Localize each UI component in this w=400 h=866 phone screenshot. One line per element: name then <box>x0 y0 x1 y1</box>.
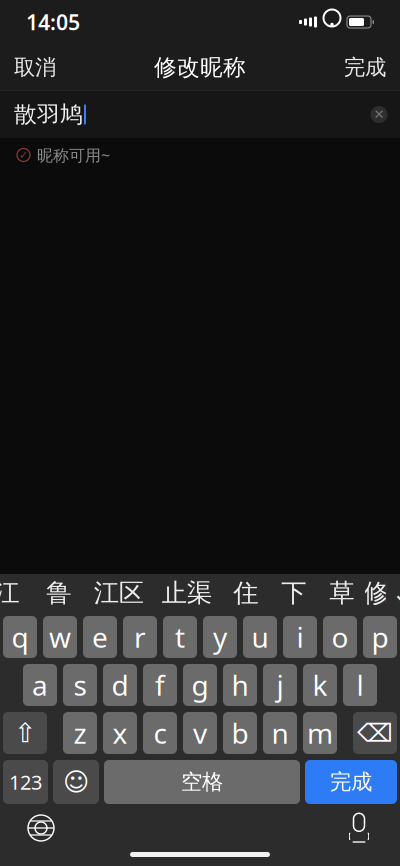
staticText: o <box>331 618 348 656</box>
button[interactable]: 123 <box>3 760 48 804</box>
button[interactable]: e <box>83 616 117 658</box>
button[interactable]: 清除 <box>362 94 396 134</box>
button[interactable]: 江区 <box>86 574 152 612</box>
button[interactable]: 止渠 <box>152 574 222 612</box>
staticText: g <box>191 666 208 704</box>
button[interactable]: 表情 <box>53 760 99 804</box>
staticText: 完成 <box>344 54 386 81</box>
staticText: t <box>175 618 185 656</box>
button[interactable]: h <box>223 664 257 706</box>
button[interactable]: n <box>263 712 297 754</box>
staticText: 修改昵称 <box>154 54 246 81</box>
staticText: 鲁 <box>46 577 71 608</box>
button[interactable]: u <box>243 616 277 658</box>
staticText: l <box>356 666 363 704</box>
button[interactable]: 空格 <box>104 760 300 804</box>
button[interactable]: i <box>283 616 317 658</box>
button[interactable]: 展开候选词 <box>386 574 400 612</box>
staticText: 散羽鸠 <box>14 101 83 128</box>
button[interactable]: 草 <box>318 574 366 612</box>
staticText: x <box>112 714 127 752</box>
staticText: e <box>92 618 108 656</box>
staticText: ⌄ <box>391 578 400 608</box>
staticText: ☺ <box>63 768 89 796</box>
button[interactable]: l <box>343 664 377 706</box>
staticText: 住 <box>233 577 258 608</box>
button[interactable]: g <box>183 664 217 706</box>
button[interactable]: 删除 <box>353 712 397 754</box>
button[interactable]: o <box>323 616 357 658</box>
staticText: a <box>32 666 48 704</box>
button[interactable]: y <box>203 616 237 658</box>
button[interactable]: c <box>143 712 177 754</box>
staticText: m <box>307 714 333 752</box>
staticText: ⌫ <box>357 719 393 747</box>
staticText: i <box>296 618 303 656</box>
staticText: 下 <box>281 577 306 608</box>
button[interactable]: v <box>183 712 217 754</box>
staticText: u <box>251 618 268 656</box>
staticText: r <box>134 618 146 656</box>
button[interactable]: 住 <box>222 574 270 612</box>
button[interactable]: 完成 <box>305 760 397 804</box>
button[interactable]: x <box>103 712 137 754</box>
button[interactable]: z <box>63 712 97 754</box>
button[interactable]: 取消 <box>0 44 70 90</box>
button[interactable]: q <box>3 616 37 658</box>
staticText: 草 <box>329 577 354 608</box>
staticText: f <box>155 666 165 704</box>
staticText: p <box>371 618 388 656</box>
button[interactable]: d <box>103 664 137 706</box>
button[interactable]: s <box>63 664 97 706</box>
button[interactable]: k <box>303 664 337 706</box>
staticText: 完成 <box>330 769 372 795</box>
staticText: 止渠 <box>162 577 212 608</box>
button[interactable]: 切换键盘 <box>14 806 68 850</box>
staticText: 14:05 <box>26 8 80 36</box>
button[interactable]: 语音输入 <box>332 806 386 850</box>
button[interactable]: m <box>303 712 337 754</box>
button[interactable]: w <box>43 616 77 658</box>
staticText: v <box>193 714 207 752</box>
staticText: ✓ <box>19 149 28 161</box>
button[interactable]: 下 <box>270 574 318 612</box>
button[interactable]: 修 <box>366 574 386 612</box>
staticText: z <box>73 714 86 752</box>
button[interactable]: 江 <box>0 574 32 612</box>
button[interactable]: p <box>363 616 397 658</box>
button[interactable]: Shift <box>3 712 47 754</box>
staticText: c <box>153 714 166 752</box>
staticText: 空格 <box>181 769 223 795</box>
staticText: q <box>11 618 28 656</box>
staticText: 123 <box>9 769 42 795</box>
button[interactable]: r <box>123 616 157 658</box>
staticText: ⇧ <box>14 718 36 748</box>
staticText: 取消 <box>14 54 56 81</box>
staticText: 江 <box>0 577 19 608</box>
staticText: w <box>49 618 71 656</box>
staticText: d <box>111 666 128 704</box>
staticText: 修 <box>363 577 388 608</box>
staticText: s <box>73 666 86 704</box>
staticText: 昵称可用~ <box>37 144 110 166</box>
staticText: n <box>271 714 288 752</box>
staticText: b <box>231 714 248 752</box>
staticText: ✕ <box>373 107 384 122</box>
button[interactable]: a <box>23 664 57 706</box>
button[interactable]: j <box>263 664 297 706</box>
button[interactable]: f <box>143 664 177 706</box>
button[interactable]: 完成 <box>330 44 400 90</box>
staticText: j <box>276 666 283 704</box>
button[interactable]: t <box>163 616 197 658</box>
button[interactable]: b <box>223 712 257 754</box>
button[interactable]: 鲁 <box>32 574 86 612</box>
staticText: k <box>312 666 327 704</box>
staticText: 江区 <box>94 577 144 608</box>
staticText: h <box>231 666 248 704</box>
staticText: y <box>213 618 227 656</box>
